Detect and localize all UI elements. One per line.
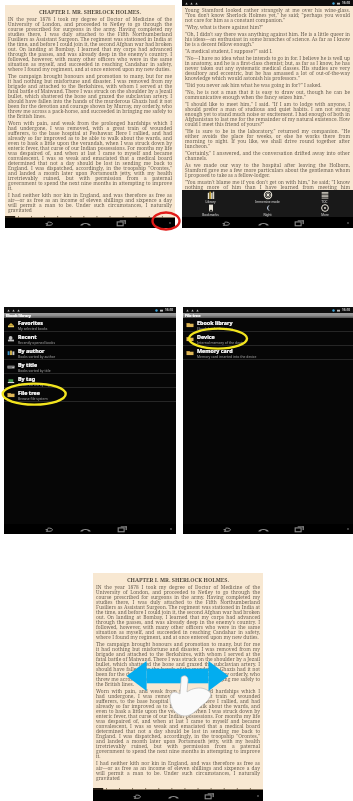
staticText: Ebook library <box>6 313 32 318</box>
button[interactable]: Device <box>183 332 353 346</box>
staticText: "Why, what is there against him?" <box>185 24 350 31</box>
staticText: "Certainly," I answered, and the convers… <box>185 150 350 162</box>
staticText: Books sorted by tag <box>18 382 50 387</box>
button[interactable]: File tree <box>4 388 176 402</box>
staticText: My selected books <box>18 326 48 331</box>
button[interactable]: By tag <box>4 374 176 388</box>
staticText: Library <box>205 200 216 204</box>
button[interactable]: Night <box>239 204 296 217</box>
staticText: The campaign brought honours and promoti… <box>96 641 260 688</box>
staticText: I had neither kith nor kin in England, a… <box>96 760 260 782</box>
staticText: 16:10 <box>165 308 174 312</box>
staticText: By tag <box>18 375 36 382</box>
button[interactable]: More <box>296 204 353 217</box>
staticText: "A medical student, I suppose?" said I. <box>185 48 350 55</box>
button[interactable]: By title <box>4 360 176 374</box>
staticText: The campaign brought honours and promoti… <box>8 73 172 120</box>
staticText: Browse file system <box>18 396 48 401</box>
staticText: Books sorted by title <box>18 368 51 373</box>
staticText: By author <box>18 347 45 354</box>
button[interactable]: Back <box>131 792 143 800</box>
button[interactable]: Memory card <box>183 346 353 360</box>
staticText: Favorites <box>18 319 43 326</box>
staticText: Books sorted by author <box>18 354 56 359</box>
button[interactable]: Recents <box>116 525 128 533</box>
button[interactable]: Recents <box>203 792 215 800</box>
staticText: "Did you never ask him what he was going… <box>185 82 350 89</box>
button[interactable]: Immersive mode <box>239 190 296 204</box>
staticText: TOC <box>321 200 328 204</box>
button[interactable]: Menu <box>256 794 260 798</box>
button[interactable]: Library <box>182 190 239 204</box>
staticText: Internal memory of the device <box>197 340 246 345</box>
button[interactable]: Menu <box>169 527 173 531</box>
staticText: Device <box>197 333 215 340</box>
button[interactable]: Bookmarks <box>182 204 239 217</box>
button[interactable]: Recent <box>4 332 176 346</box>
staticText: "You mustn't blame me if you don't get o… <box>185 179 350 201</box>
staticText: More <box>321 213 329 217</box>
staticText: Worn with pain, and weak from the prolon… <box>96 688 260 760</box>
staticText: "Oh, I didn't say there was anything aga… <box>185 31 350 48</box>
button[interactable]: Home <box>79 525 91 533</box>
staticText: Night <box>263 213 272 217</box>
button[interactable]: By author <box>4 346 176 360</box>
button[interactable]: TOC <box>296 190 353 204</box>
button[interactable]: Back <box>43 525 55 533</box>
staticText: "No, he is not a man that it is easy to … <box>185 89 350 101</box>
button[interactable]: Home <box>257 219 269 227</box>
button[interactable]: Menu <box>346 221 350 225</box>
staticText: Recently opened books <box>18 340 56 345</box>
staticText: Ebook library <box>197 319 233 326</box>
staticText: Bookmarks <box>202 213 219 217</box>
button[interactable]: Home <box>79 219 91 227</box>
button[interactable]: Recents <box>293 525 305 533</box>
staticText: Worn with pain, and weak from the prolon… <box>8 120 172 192</box>
staticText: IN the year 1878 I took my degree of Doc… <box>8 16 172 73</box>
button[interactable]: Menu <box>346 527 350 531</box>
button[interactable]: Back <box>43 219 55 227</box>
staticText: "I should like to meet him," I said. "If… <box>185 101 350 128</box>
staticText: CHAPTER I. MR. SHERLOCK HOLMES. <box>96 576 260 583</box>
button[interactable]: Favorites <box>4 318 176 332</box>
button[interactable]: Menu <box>168 221 172 225</box>
staticText: Memory card inserted into the device <box>197 354 257 359</box>
button[interactable]: Home <box>257 525 269 533</box>
staticText: 16:10 <box>342 1 351 5</box>
staticText: File tree <box>18 389 40 396</box>
staticText: By title <box>18 361 38 368</box>
button[interactable]: Back <box>221 525 233 533</box>
staticText: Memory card <box>197 347 233 354</box>
staticText: Young Stamford looked rather strangely a… <box>185 7 350 24</box>
staticText: "He is sure to be in the laboratory," re… <box>185 128 350 150</box>
staticText: Recent <box>18 333 37 340</box>
staticText: Immersive mode <box>255 200 280 204</box>
button[interactable]: Recents <box>115 219 127 227</box>
button[interactable]: Ebook library <box>183 318 353 332</box>
button[interactable]: Home <box>167 792 179 800</box>
staticText: IN the year 1878 I took my degree of Doc… <box>96 584 260 641</box>
staticText: As we made our way to the hospital after… <box>185 162 350 179</box>
staticText: 16:10 <box>342 308 351 312</box>
staticText: CHAPTER I. MR. SHERLOCK HOLMES. <box>8 8 172 15</box>
staticText: File tree <box>185 313 201 318</box>
button[interactable]: Back <box>220 219 232 227</box>
button[interactable]: Recents <box>293 219 305 227</box>
staticText: "No—I have no idea what he intends to go… <box>185 55 350 82</box>
staticText: Ebook books directory <box>197 326 233 331</box>
staticText: I had neither kith nor kin in England, a… <box>8 192 172 214</box>
